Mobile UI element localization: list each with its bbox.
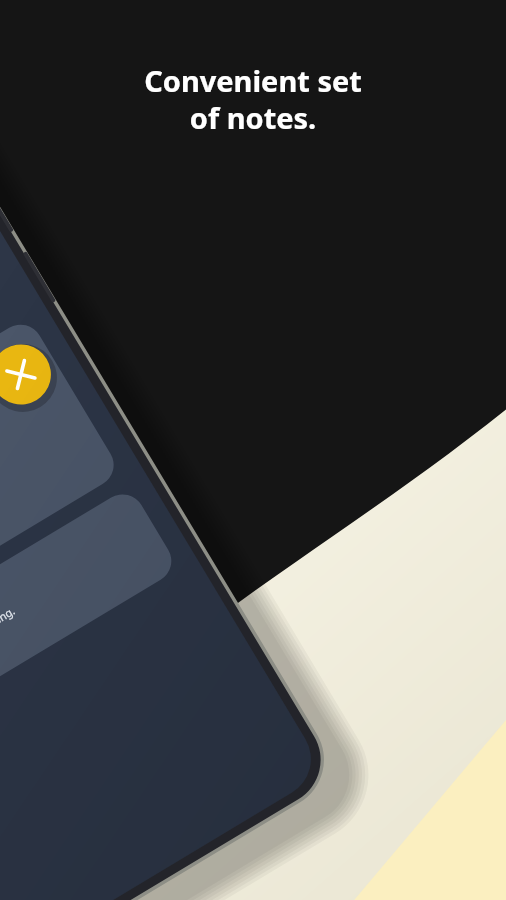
button[interactable]: Convenient set of notes promotional scre… <box>0 0 506 900</box>
